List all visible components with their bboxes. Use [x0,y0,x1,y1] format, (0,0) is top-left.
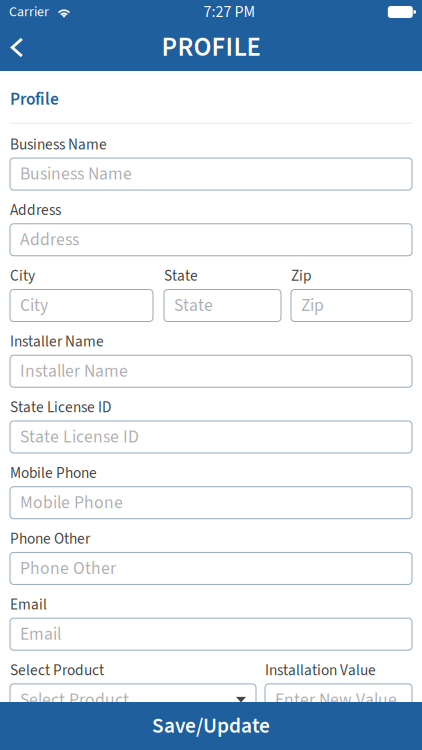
staticText: Select Product [10,660,104,681]
staticText: Address [10,199,61,221]
staticText: Select Product [20,687,129,712]
staticText: Phone Other [10,528,90,550]
staticText: Mobile Phone [20,490,123,515]
staticText: State License ID [20,424,139,449]
staticText: Phone Other [20,556,116,581]
staticText: Address [20,227,79,252]
staticText: City [20,293,48,318]
staticText: Carrier [9,2,49,22]
staticText: State License ID [10,397,111,418]
staticText: State [174,293,213,318]
staticText: Save/Update [152,711,270,741]
staticText: Profile [10,87,59,112]
staticText: Email [10,594,47,616]
staticText: 7:27 PM [203,1,255,23]
staticText: City [10,265,35,287]
staticText: Installation Value [265,660,376,681]
staticText: State [164,265,198,287]
staticText: PROFILE [161,28,260,66]
staticText: Enter New Value [275,687,397,712]
staticText: Business Name [20,161,132,187]
staticText: Business Name [10,134,107,155]
button[interactable]: Back [0,25,34,69]
staticText: Installer Name [20,359,128,384]
staticText: Email [20,622,61,647]
button[interactable]: Save/Update [0,702,422,750]
staticText: Mobile Phone [10,462,97,484]
staticText: Zip [301,293,324,318]
staticText: Installer Name [10,331,104,353]
staticText: Zip [291,265,312,287]
